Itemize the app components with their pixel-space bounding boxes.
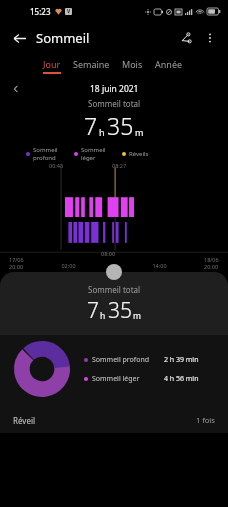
staticText: Sommeil [33, 146, 58, 154]
staticText: V [67, 8, 71, 15]
staticText: Jour [43, 58, 61, 70]
staticText: 4 h 56 min [164, 374, 199, 384]
button[interactable]: Sommeil profond [84, 355, 199, 365]
button[interactable]: Sommeil [74, 146, 106, 162]
staticText: h [100, 310, 106, 322]
other: Sleep composition chart [14, 341, 70, 397]
staticText: Réveils [129, 150, 149, 158]
staticText: Sommeil profond [92, 355, 150, 365]
button[interactable]: Semaine [72, 56, 111, 76]
staticText: léger [81, 154, 96, 162]
staticText: 08:00 [101, 250, 116, 257]
staticText: Réveil [13, 415, 36, 426]
staticText: Sommeil [81, 146, 106, 154]
staticText: 15:23 [30, 6, 51, 17]
staticText: Semaine [73, 58, 110, 70]
staticText: 18 juin 2021 [90, 83, 139, 95]
staticText: m [133, 310, 141, 322]
staticText: 35 [107, 110, 134, 141]
button[interactable]: Previous day [8, 82, 24, 96]
button[interactable]: Réveil [0, 407, 228, 433]
staticText: 7 [84, 110, 98, 141]
staticText: 00:48 [49, 162, 64, 169]
button[interactable]: Scrubber [106, 264, 122, 280]
staticText: m [135, 126, 144, 138]
button[interactable]: Share [174, 26, 198, 50]
staticText: 20:00 [9, 263, 24, 270]
staticText: Sommeil total [88, 284, 141, 295]
button[interactable]: Année [154, 56, 184, 76]
button[interactable]: Sommeil [26, 146, 58, 162]
staticText: 17/06 [9, 256, 24, 263]
staticText: profond [33, 154, 56, 162]
button[interactable]: Sommeil léger [84, 374, 199, 384]
staticText: 02:00 [61, 262, 76, 269]
button[interactable]: Back [7, 26, 31, 50]
staticText: Sommeil total [88, 98, 141, 109]
staticText: 18/06 [204, 256, 219, 263]
staticText: 7 [87, 296, 99, 325]
button[interactable]: Réveils [122, 150, 149, 158]
staticText: 20:00 [204, 263, 219, 270]
button[interactable]: Jour [42, 56, 62, 76]
staticText: Année [155, 58, 183, 70]
button[interactable]: More options [198, 26, 222, 50]
staticText: Sommeil léger [92, 374, 140, 384]
staticText: Sommeil [36, 29, 90, 47]
staticText: 2 h 39 min [164, 355, 199, 365]
staticText: Mois [122, 58, 143, 70]
staticText: 08:27 [112, 162, 127, 169]
staticText: h [99, 126, 105, 138]
staticText: 14:00 [152, 262, 167, 269]
staticText: 35 [108, 296, 132, 325]
staticText: 1 fois [196, 415, 215, 425]
button[interactable]: Mois [121, 56, 144, 76]
